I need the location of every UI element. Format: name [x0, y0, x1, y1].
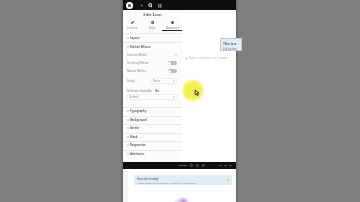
staticText: Background	[130, 118, 147, 122]
button[interactable]: Content Width	[127, 51, 177, 59]
staticText: A new version of this plugin is availabl…	[137, 181, 196, 184]
staticText: Responsive	[130, 143, 146, 147]
button[interactable]: Window control	[219, 164, 222, 167]
button[interactable]: Typography	[123, 107, 182, 115]
button[interactable]: Toolbar action	[196, 164, 199, 167]
button[interactable]: Mask	[123, 133, 182, 141]
staticText: Edit Icon	[123, 12, 182, 18]
button[interactable]: Responsive	[123, 141, 182, 149]
button[interactable]: Window control	[224, 164, 227, 167]
staticText: Let's a few	[223, 47, 237, 51]
button[interactable]: Advanced	[162, 19, 182, 31]
staticText: None	[153, 79, 161, 83]
button[interactable]: This is a	[220, 38, 242, 51]
staticText: Scrolling Effects	[127, 61, 149, 65]
staticText: Typography	[130, 109, 147, 113]
staticText: Add a container or Content	[189, 56, 229, 60]
staticText: Style	[149, 26, 156, 30]
button[interactable]: Scrolling Effects	[127, 59, 177, 67]
staticText: Mask	[130, 135, 138, 139]
staticText: Border	[130, 126, 140, 130]
staticText: Updated	[178, 164, 187, 167]
staticText: Motion Effects	[130, 45, 151, 49]
button[interactable]: Style	[142, 19, 162, 31]
staticText: Attributes	[130, 152, 145, 156]
button[interactable]: Border	[123, 124, 182, 132]
staticText: Content	[127, 26, 138, 30]
staticText: Content Width	[127, 53, 147, 57]
button[interactable]: Search	[148, 3, 153, 8]
staticText: Layout	[130, 36, 140, 40]
button[interactable]: Layout	[123, 33, 182, 42]
button[interactable]: Your site is ready	[134, 175, 232, 185]
button[interactable]: Toolbar action	[202, 164, 205, 167]
button[interactable]: Toolbar action	[190, 164, 193, 167]
button[interactable]: Window control	[229, 164, 232, 167]
staticText: This is a	[223, 41, 237, 46]
button[interactable]: None	[153, 78, 175, 84]
staticText: Sticky	[127, 79, 135, 83]
staticText: Software Available	[127, 89, 152, 93]
staticText: Default	[129, 95, 139, 99]
button[interactable]: Menu	[126, 2, 133, 9]
button[interactable]: Preview	[139, 3, 144, 8]
button[interactable]: Background	[123, 116, 182, 124]
button[interactable]: Apps	[157, 3, 162, 8]
staticText: Mouse Effects	[127, 69, 146, 73]
button[interactable]: Motion Effects	[123, 42, 182, 51]
button[interactable]: Mouse Effects	[127, 67, 177, 75]
button[interactable]: Attributes	[123, 150, 182, 158]
staticText: No	[155, 89, 160, 93]
staticText: Advanced	[166, 26, 179, 30]
staticText: Your site is ready	[137, 177, 159, 180]
button[interactable]: Content	[123, 19, 142, 31]
button[interactable]: Default	[129, 94, 175, 100]
